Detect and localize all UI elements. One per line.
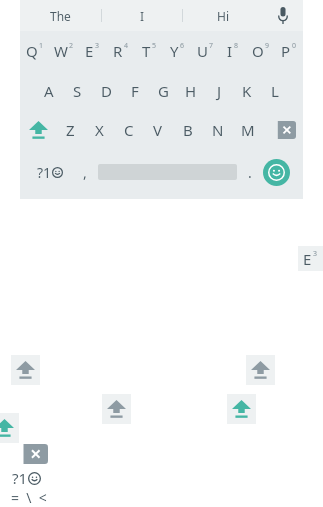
button[interactable]: The — [20, 0, 101, 31]
staticText: V — [153, 120, 163, 140]
button[interactable]: Shift — [11, 355, 40, 385]
button[interactable]: Voice input — [263, 0, 303, 31]
staticText: ?1 — [12, 468, 28, 488]
button[interactable]: I — [102, 0, 182, 31]
button[interactable]: I — [219, 31, 247, 71]
staticText: 3 — [95, 41, 100, 51]
staticText: X — [95, 120, 104, 140]
button[interactable]: Emoji — [263, 159, 290, 186]
button[interactable]: R — [107, 31, 135, 71]
button[interactable]: = \ < — [11, 488, 47, 507]
button[interactable]: Shift — [0, 413, 19, 443]
button[interactable]: B — [173, 110, 203, 149]
staticText: E — [85, 41, 94, 61]
button[interactable]: X — [85, 110, 114, 149]
button[interactable]: Shift — [102, 394, 131, 424]
staticText: C — [124, 120, 134, 140]
button[interactable]: Shift — [227, 394, 256, 424]
button[interactable]: , — [72, 149, 98, 195]
button[interactable]: E — [78, 31, 107, 71]
button[interactable]: ?1 — [28, 149, 72, 195]
staticText: 3 — [313, 249, 318, 259]
staticText: 4 — [124, 41, 129, 51]
staticText: The — [50, 8, 71, 24]
button[interactable]: V — [143, 110, 173, 149]
button[interactable]: N — [203, 110, 233, 149]
staticText: Z — [66, 120, 75, 140]
staticText: F — [131, 81, 139, 101]
staticText: E — [303, 249, 312, 269]
staticText: 5 — [152, 41, 157, 51]
button[interactable]: Q — [20, 31, 49, 71]
staticText: 1 — [39, 41, 44, 51]
staticText: 2 — [69, 41, 74, 51]
staticText: D — [101, 81, 112, 101]
staticText: J — [217, 81, 222, 101]
staticText: 0 — [292, 41, 297, 51]
button[interactable]: Shift — [20, 110, 56, 149]
button[interactable]: Backspace — [13, 444, 48, 464]
staticText: H — [185, 81, 197, 101]
button[interactable]: A — [34, 71, 63, 110]
button[interactable]: G — [149, 71, 177, 110]
staticText: , — [83, 163, 87, 182]
staticText: Hi — [217, 8, 229, 24]
staticText: 9 — [265, 41, 270, 51]
staticText: = \ < — [11, 488, 47, 507]
staticText: 7 — [209, 41, 214, 51]
staticText: B — [183, 120, 193, 140]
staticText: I — [140, 8, 145, 24]
staticText: I — [227, 41, 233, 61]
staticText: M — [241, 120, 255, 140]
button[interactable]: M — [233, 110, 263, 149]
staticText: S — [73, 81, 82, 101]
button[interactable]: Shift — [246, 355, 275, 385]
staticText: U — [197, 41, 208, 61]
button[interactable]: Hi — [183, 0, 263, 31]
button[interactable]: P — [275, 31, 303, 71]
staticText: Q — [26, 41, 38, 61]
button[interactable]: H — [177, 71, 205, 110]
staticText: . — [248, 163, 252, 182]
button[interactable]: E — [298, 246, 323, 271]
button[interactable]: ?1 — [12, 468, 41, 488]
button[interactable]: Y — [163, 31, 191, 71]
staticText: T — [142, 41, 151, 61]
staticText: P — [281, 41, 291, 61]
staticText: O — [252, 41, 264, 61]
button[interactable]: U — [191, 31, 219, 71]
staticText: A — [44, 81, 54, 101]
button[interactable]: W — [49, 31, 78, 71]
staticText: N — [212, 120, 224, 140]
button[interactable]: T — [135, 31, 163, 71]
button[interactable]: O — [247, 31, 275, 71]
button[interactable]: K — [233, 71, 261, 110]
staticText: R — [113, 41, 123, 61]
button[interactable]: D — [92, 71, 121, 110]
button[interactable]: J — [205, 71, 233, 110]
staticText: W — [54, 41, 68, 61]
staticText: 8 — [234, 41, 239, 51]
staticText: K — [242, 81, 252, 101]
button[interactable]: Backspace — [263, 110, 303, 149]
staticText: ?1 — [37, 163, 52, 182]
button[interactable]: F — [121, 71, 149, 110]
staticText: L — [271, 81, 279, 101]
button[interactable]: . — [237, 149, 263, 195]
button[interactable]: Z — [56, 110, 85, 149]
button[interactable]: L — [261, 71, 289, 110]
staticText: Y — [170, 41, 179, 61]
button[interactable]: S — [63, 71, 92, 110]
button[interactable]: C — [114, 110, 143, 149]
staticText: 6 — [180, 41, 185, 51]
staticText: G — [158, 81, 169, 101]
